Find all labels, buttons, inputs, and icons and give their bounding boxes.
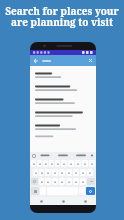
button[interactable] [59, 169, 65, 176]
button[interactable] [68, 160, 74, 167]
other: Voice input [90, 154, 94, 158]
other: Google [32, 154, 36, 158]
button[interactable] [37, 160, 42, 167]
button[interactable] [59, 178, 65, 185]
button[interactable] [30, 121, 96, 134]
button[interactable] [61, 160, 67, 167]
button[interactable]: Backspace [87, 178, 95, 185]
button[interactable]: Shift [31, 178, 38, 185]
button[interactable] [72, 152, 90, 159]
button[interactable] [73, 169, 79, 176]
button[interactable] [75, 160, 81, 167]
button[interactable] [30, 95, 96, 108]
button[interactable]: Search [86, 187, 95, 195]
button[interactable] [80, 178, 86, 185]
button[interactable]: Recents [74, 197, 96, 205]
other: Clear search [88, 58, 93, 63]
button[interactable]: Back [30, 197, 52, 205]
button[interactable] [66, 169, 72, 176]
button[interactable] [31, 160, 36, 167]
button[interactable] [55, 160, 60, 167]
other: Back [33, 58, 39, 64]
button[interactable] [82, 160, 88, 167]
button[interactable] [66, 178, 72, 185]
button[interactable] [30, 82, 96, 95]
button[interactable] [39, 178, 44, 185]
button[interactable] [45, 178, 51, 185]
button[interactable] [30, 69, 96, 82]
staticText: Search for places your are planning to v… [4, 4, 120, 29]
button[interactable] [73, 178, 79, 185]
button[interactable] [43, 160, 48, 167]
button[interactable] [30, 108, 96, 121]
button[interactable] [89, 160, 95, 167]
button[interactable]: Back [30, 55, 96, 66]
button[interactable]: Home [52, 197, 74, 205]
button[interactable] [49, 160, 54, 167]
button[interactable] [39, 169, 44, 176]
button[interactable] [45, 169, 51, 176]
button[interactable] [80, 169, 86, 176]
button[interactable] [54, 152, 72, 159]
button[interactable] [52, 178, 58, 185]
button[interactable] [33, 169, 38, 176]
button[interactable]: Symbols [31, 187, 39, 195]
button[interactable] [87, 169, 93, 176]
button[interactable] [36, 152, 54, 159]
button[interactable] [52, 169, 58, 176]
